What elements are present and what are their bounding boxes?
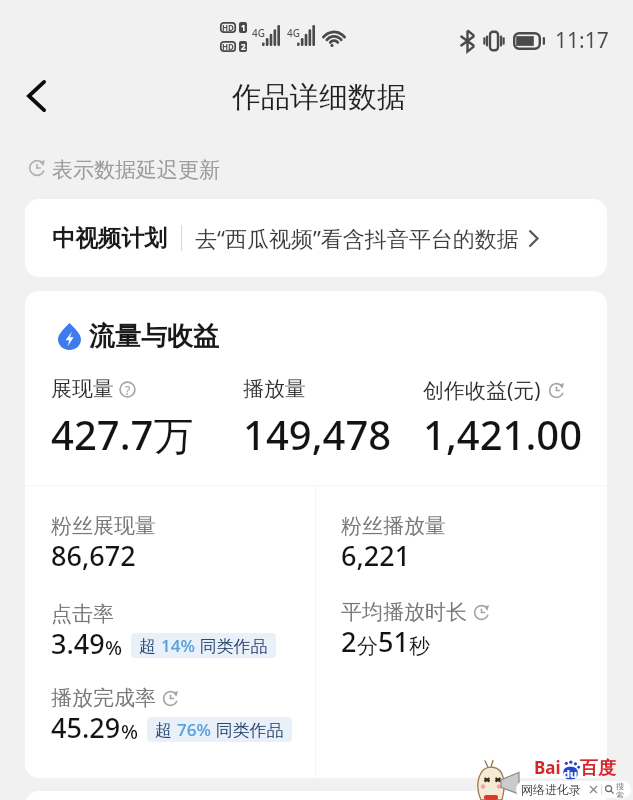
staticText: 1,421.00 [423,407,583,461]
button[interactable]: Back [12,72,60,120]
staticText: du [563,766,578,781]
staticText: 搜索 [616,781,627,798]
staticText: 同类作品 [211,718,284,741]
staticText: 51 [378,623,409,660]
staticText: 超 [139,634,161,657]
staticText: 去“西瓜视频”看含抖音平台的数据 [195,223,519,253]
staticText: 149,478 [243,407,392,461]
staticText: 网络进化录 [521,782,581,797]
button[interactable] [25,791,607,800]
staticText: 同类作品 [195,634,268,657]
staticText: % [105,634,123,661]
staticText: 4G [252,26,265,40]
staticText: 平均播放时长 [341,599,467,625]
staticText: 作品详细数据 [232,79,406,116]
staticText: Bai [534,756,561,779]
staticText: 2 [341,623,357,660]
staticText: 展现量 [51,376,114,402]
staticText: HD [222,41,234,52]
staticText: 45.29 [51,709,121,746]
staticText: 表示数据延迟更新 [52,157,220,183]
staticText: 粉丝播放量 [341,513,446,539]
staticText: 百度 [580,757,616,780]
staticText: 6,221 [341,537,411,574]
staticText: 播放量 [243,376,306,402]
staticText: 点击率 [51,601,114,627]
staticText: 分 [357,633,378,659]
button[interactable]: 中视频计划 [25,199,607,277]
staticText: 4G [287,26,300,40]
staticText: 86,672 [51,537,136,574]
staticText: HD [222,22,234,33]
staticText: 创作收益(元) [423,376,541,405]
staticText: 粉丝展现量 [51,513,156,539]
staticText: ? [125,382,131,398]
staticText: 流量与收益 [89,320,219,353]
staticText: 11:17 [555,26,609,55]
staticText: 3.49 [51,625,105,662]
staticText: 14% [161,634,195,657]
button[interactable]: 网络进化录 [521,781,627,798]
staticText: 2 [241,41,246,52]
staticText: 超 [155,718,177,741]
staticText: 秒 [409,633,430,659]
staticText: 1 [241,22,246,33]
staticText: 76% [177,718,211,741]
staticText: 427.7万 [51,407,194,462]
staticText: 中视频计划 [52,224,167,253]
staticText: 播放完成率 [51,685,156,711]
staticText: % [121,718,139,745]
